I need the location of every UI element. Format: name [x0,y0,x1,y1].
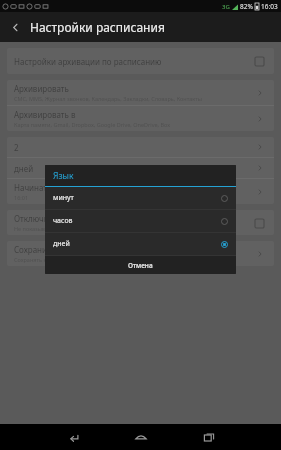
staticText: дней [53,239,221,249]
button[interactable]: часов [45,210,236,232]
button[interactable]: Сохранить [7,241,274,266]
button[interactable]: Отмена [45,256,236,274]
button[interactable]: дней [45,233,236,255]
staticText: Не показывать экран архивации [14,225,101,232]
button[interactable]: Toggle option [251,215,267,231]
staticText: Отключить экран [14,213,82,224]
staticText: 82% [240,2,253,11]
button[interactable]: Настройки архивации по расписанию [7,48,274,74]
staticText: Начинать [14,182,52,193]
button[interactable]: Toggle option [251,53,267,69]
button[interactable]: Начинать [7,179,274,204]
staticText: Язык [53,170,74,182]
staticText: 16:01 [14,194,29,201]
staticText: 16:03 [261,2,278,11]
staticText: Сохранять настройки архивации [14,256,102,263]
staticText: часов [53,216,221,226]
button[interactable]: Recent apps [191,424,227,450]
staticText: Архивировать в [14,109,76,120]
staticText: Архивировать [14,83,69,94]
staticText: дней [14,163,253,174]
staticText: СМС, MMS, Журнал звонков, Календарь, Зак… [14,95,202,102]
button[interactable]: Back [55,424,91,450]
staticText: 3G [222,3,230,11]
staticText: Настройки расписания [30,19,165,35]
button[interactable]: Архивировать [7,80,274,105]
staticText: Настройки архивации по расписанию [14,56,251,67]
staticText: Сохранить [14,244,56,255]
button[interactable]: Отключить экран [7,210,274,235]
button[interactable]: Back [0,12,30,42]
button[interactable]: дней [7,158,274,178]
staticText: Карта памяти, Gmail, Dropbox, Google Dri… [14,121,171,128]
button[interactable]: Home [123,424,159,450]
button[interactable]: Архивировать в [7,106,274,131]
button[interactable]: минут [45,187,236,209]
staticText: минут [53,193,221,203]
staticText: Отмена [128,261,153,270]
